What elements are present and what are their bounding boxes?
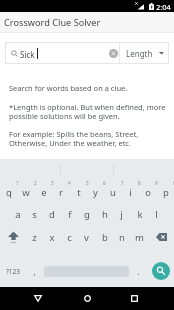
staticText: q — [6, 186, 12, 199]
staticText: *Length is optional. But when defined, m… — [9, 102, 167, 122]
button[interactable]: s — [26, 203, 43, 225]
staticText: 1 — [16, 180, 19, 186]
button[interactable]: . — [131, 260, 145, 282]
button[interactable]: f — [61, 203, 78, 225]
button[interactable]: j — [113, 203, 130, 225]
staticText: 6 — [103, 180, 106, 186]
staticText: n — [119, 231, 125, 244]
staticText: e — [41, 186, 47, 199]
button[interactable]: w — [17, 181, 34, 203]
staticText: o — [145, 186, 151, 199]
staticText: ?123 — [6, 267, 20, 276]
button[interactable]: l — [148, 203, 165, 225]
staticText: c — [67, 231, 72, 244]
button[interactable]: Sick — [10, 43, 119, 63]
staticText: , — [33, 266, 36, 277]
staticText: a — [15, 208, 21, 221]
staticText: 2:04 — [156, 2, 171, 12]
staticText: z — [32, 231, 37, 244]
staticText: g — [84, 208, 90, 221]
staticText: f — [68, 208, 72, 221]
staticText: 5 — [86, 180, 89, 186]
button[interactable]: m — [131, 226, 148, 248]
button[interactable]: c — [61, 226, 78, 248]
staticText: r — [59, 186, 63, 199]
button[interactable]: Clear query — [107, 47, 120, 60]
button[interactable]: p — [157, 181, 174, 203]
staticText: Length — [126, 48, 153, 59]
staticText: d — [49, 208, 55, 221]
staticText: 9 — [155, 180, 158, 186]
staticText: . — [137, 266, 140, 277]
staticText: 8 — [138, 180, 141, 186]
button[interactable]: k — [131, 203, 148, 225]
staticText: 4 — [68, 180, 71, 186]
staticText: j — [120, 208, 123, 221]
staticText: Sick — [20, 49, 35, 60]
button[interactable]: n — [113, 226, 130, 248]
button[interactable]: e — [35, 181, 52, 203]
button[interactable]: Length — [120, 43, 168, 63]
button[interactable]: x — [43, 226, 60, 248]
staticText: u — [110, 186, 116, 199]
staticText: v — [84, 231, 89, 244]
button[interactable]: d — [43, 203, 60, 225]
staticText: 3 — [51, 180, 54, 186]
button[interactable]: Home — [71, 287, 103, 310]
button[interactable]: b — [96, 226, 113, 248]
button[interactable]: y — [87, 181, 104, 203]
button[interactable]: r — [52, 181, 69, 203]
button[interactable]: Recent apps — [118, 287, 150, 310]
button[interactable]: h — [96, 203, 113, 225]
button[interactable]: v — [78, 226, 95, 248]
button[interactable]: , — [27, 260, 41, 282]
button[interactable]: ?123 — [0, 260, 26, 282]
staticText: k — [137, 208, 143, 221]
staticText: b — [102, 231, 108, 244]
staticText: 2 — [34, 180, 37, 186]
staticText: w — [22, 186, 30, 199]
staticText: i — [129, 186, 132, 199]
staticText: h — [102, 208, 108, 221]
button[interactable]: Space — [41, 260, 132, 282]
button[interactable]: Shift — [0, 226, 26, 248]
button[interactable]: u — [104, 181, 121, 203]
staticText: l — [155, 208, 158, 221]
staticText: t — [77, 186, 81, 199]
button[interactable]: Back — [22, 287, 54, 310]
staticText: p — [163, 186, 169, 199]
button[interactable]: Backspace — [148, 226, 174, 248]
button[interactable]: Search — [152, 262, 170, 280]
button[interactable]: g — [78, 203, 95, 225]
button[interactable]: t — [70, 181, 87, 203]
staticText: x — [49, 231, 55, 244]
staticText: y — [93, 186, 98, 199]
staticText: s — [32, 208, 37, 221]
staticText: Crossword Clue Solver — [4, 16, 101, 29]
staticText: 7 — [121, 180, 124, 186]
button[interactable]: Crossword Clue Solver — [0, 12, 174, 33]
staticText: Search for words based on a clue. — [9, 83, 128, 93]
button[interactable]: a — [9, 203, 26, 225]
staticText: m — [135, 231, 144, 244]
staticText: 0 — [173, 180, 174, 186]
staticText: For example: Spills the beans, Street, O… — [9, 129, 167, 149]
button[interactable]: i — [122, 181, 139, 203]
button[interactable]: q — [0, 181, 17, 203]
button[interactable]: o — [139, 181, 156, 203]
button[interactable]: z — [26, 226, 43, 248]
